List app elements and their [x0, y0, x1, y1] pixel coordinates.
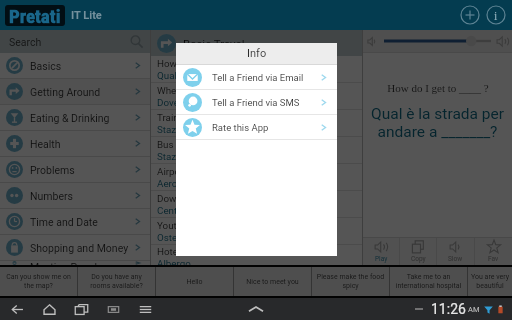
button[interactable]: Back [1, 298, 33, 320]
staticText: Problems [30, 164, 75, 176]
staticText: Tell a Friend via SMS [212, 97, 300, 108]
button[interactable]: Health [0, 131, 150, 156]
staticText: i [494, 9, 498, 22]
button[interactable]: Search [9, 30, 143, 53]
button[interactable]: Tell a Friend via Email [176, 65, 337, 89]
staticText: Do you have any rooms available? [81, 273, 152, 290]
button[interactable]: Numbers [0, 183, 150, 208]
button[interactable]: Hotel [151, 245, 362, 265]
button[interactable]: You are very beautiful [468, 267, 512, 296]
staticText: How do I get to ____ ? [387, 82, 489, 94]
staticText: Stazione ferroviaria [157, 124, 242, 135]
staticText: Take me to an international hospital [393, 273, 464, 290]
button[interactable]: Train station [151, 110, 362, 136]
button[interactable]: Slow [437, 238, 474, 265]
button[interactable]: Tell a Friend via SMS [176, 90, 337, 114]
button[interactable]: Shopping and Money [0, 235, 150, 260]
staticText: 11:26 [431, 301, 466, 317]
button[interactable]: Do you have any rooms available? [78, 267, 155, 296]
button[interactable]: Bus station [151, 137, 362, 163]
staticText: Search [9, 36, 42, 48]
button[interactable]: Time and Date [0, 209, 150, 234]
button[interactable]: Take me to an international hospital [390, 267, 467, 296]
button[interactable]: Menu [129, 298, 161, 320]
staticText: Ostello della gioventù [157, 232, 251, 243]
button[interactable]: Add [458, 3, 482, 27]
button[interactable]: How do I get to ____ ? [151, 56, 362, 82]
staticText: Getting Around [30, 86, 101, 98]
staticText: Pretati [9, 5, 61, 26]
staticText: Health [30, 138, 61, 150]
staticText: Bus station [157, 139, 207, 150]
button[interactable]: Getting Around [0, 79, 150, 104]
staticText: IT Lite [71, 9, 102, 22]
staticText: Hotel [157, 246, 181, 257]
button[interactable]: Screenshot [97, 298, 129, 320]
button[interactable]: Basics [0, 53, 150, 78]
button[interactable]: Fav [475, 238, 512, 265]
staticText: How do I get to ____ ? [157, 58, 251, 69]
staticText: Airport [157, 166, 187, 177]
staticText: Aeroporto [157, 178, 201, 189]
button[interactable]: Youth hostel [151, 218, 362, 244]
staticText: Please make the food spicy [315, 273, 386, 290]
staticText: Slow [448, 255, 463, 263]
button[interactable]: Meeting People [0, 261, 150, 265]
staticText: Basics [30, 60, 62, 72]
button[interactable]: Show navigation [241, 298, 271, 320]
staticText: Eating & Drinking [30, 112, 110, 124]
staticText: Play [375, 255, 388, 263]
button[interactable]: Recent apps [65, 298, 97, 320]
staticText: AM [468, 305, 480, 314]
staticText: Can you show me on the map? [3, 273, 74, 290]
staticText: Qual è la strada per andare a ___? [157, 70, 302, 81]
staticText: Basic Travel [183, 37, 245, 50]
staticText: Centro [157, 205, 186, 216]
button[interactable]: Hello [156, 267, 233, 296]
staticText: Numbers [30, 190, 73, 202]
staticText: Hello [186, 278, 203, 286]
button[interactable]: Info [484, 3, 508, 27]
staticText: Where is the ____ ? [157, 85, 238, 96]
staticText: Shopping and Money [30, 242, 129, 254]
button[interactable]: Nice to meet you [234, 267, 311, 296]
staticText: Nice to meet you [246, 278, 299, 286]
staticText: Tell a Friend via Email [212, 72, 304, 83]
staticText: Info [247, 47, 267, 60]
button[interactable]: Please make the food spicy [312, 267, 389, 296]
button[interactable]: Eating & Drinking [0, 105, 150, 130]
staticText: Copy [411, 255, 426, 263]
staticText: Qual è la strada per andare a _______? [367, 105, 508, 141]
staticText: You are very beautiful [471, 273, 509, 290]
button[interactable]: Where is the ____ ? [151, 83, 362, 109]
button[interactable]: Problems [0, 157, 150, 182]
button[interactable]: Home [33, 298, 65, 320]
button[interactable]: Can you show me on the map? [0, 267, 77, 296]
staticText: Rate this App [212, 122, 269, 133]
staticText: Fav [488, 255, 499, 263]
staticText: Downtown [157, 193, 204, 204]
staticText: Train station [157, 112, 212, 123]
staticText: Dove è ____ ? [157, 97, 214, 108]
button[interactable]: Basic Travel [157, 30, 362, 56]
button[interactable]: Rate this App [176, 115, 337, 139]
button[interactable]: Downtown [151, 191, 362, 217]
staticText: Stazione degli autobus [157, 151, 257, 162]
button[interactable]: Play [363, 238, 399, 265]
staticText: Meeting People [30, 261, 103, 265]
staticText: Time and Date [30, 216, 98, 228]
staticText: Albergo [157, 258, 191, 265]
staticText: Youth hostel [157, 220, 212, 231]
button[interactable]: Copy [400, 238, 436, 265]
button[interactable]: Airport [151, 164, 362, 190]
